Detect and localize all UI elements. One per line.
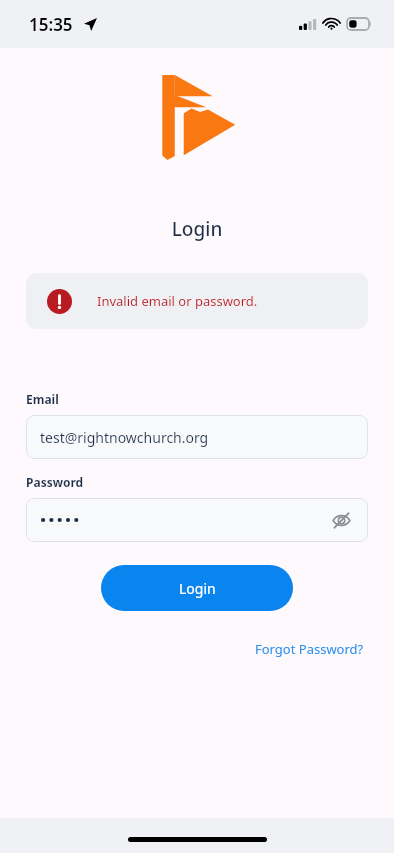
staticText: Forgot Password?: [255, 640, 364, 658]
staticText: Login: [0, 216, 394, 242]
staticText: Login: [179, 579, 216, 598]
button[interactable]: Forgot Password?: [251, 636, 368, 662]
staticText: Invalid email or password.: [97, 292, 258, 310]
button[interactable]: Invalid email or password.: [26, 273, 368, 329]
staticText: test@rightnowchurch.org: [40, 428, 209, 447]
button[interactable]: test@rightnowchurch.org: [26, 415, 368, 459]
staticText: Email: [26, 391, 59, 407]
button[interactable]: Show password: [326, 505, 356, 535]
button[interactable]: Login: [101, 565, 293, 611]
staticText: Password: [26, 474, 84, 490]
button[interactable]: Show password: [26, 498, 368, 542]
staticText: 15:35: [29, 13, 73, 36]
